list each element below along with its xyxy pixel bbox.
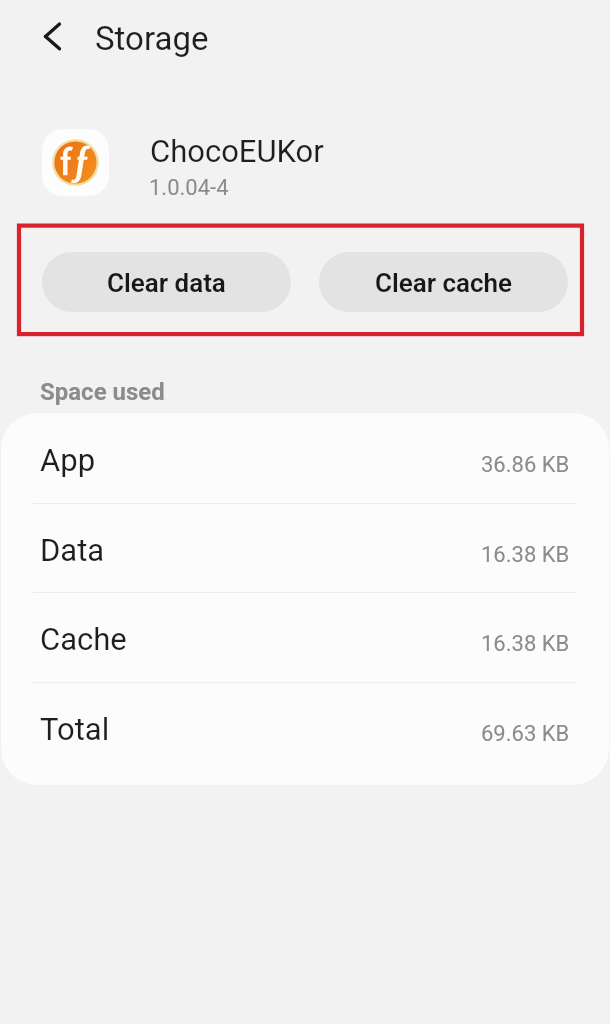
staticText: 16.38 KB	[481, 542, 570, 568]
staticText: Total	[40, 711, 110, 747]
staticText: 1.0.04-4	[149, 175, 229, 201]
staticText: Space used	[40, 378, 165, 406]
staticText: Clear data	[107, 268, 226, 298]
button[interactable]: Data	[1, 503, 609, 592]
staticText: Cache	[40, 621, 127, 657]
staticText: Data	[40, 532, 105, 568]
staticText: ChocoEUKor	[150, 133, 324, 169]
button[interactable]: Total	[1, 682, 609, 785]
button[interactable]: Clear cache	[319, 252, 568, 312]
staticText: Storage	[95, 19, 209, 58]
staticText: 36.86 KB	[481, 452, 570, 478]
staticText: 16.38 KB	[481, 631, 570, 657]
staticText: 69.63 KB	[481, 721, 570, 747]
button[interactable]: Clear data	[42, 252, 291, 312]
button[interactable]: Cache	[1, 592, 609, 682]
staticText: App	[40, 442, 96, 478]
button[interactable]: App	[1, 413, 609, 503]
button[interactable]: Back	[22, 13, 69, 60]
staticText: Clear cache	[375, 268, 513, 298]
